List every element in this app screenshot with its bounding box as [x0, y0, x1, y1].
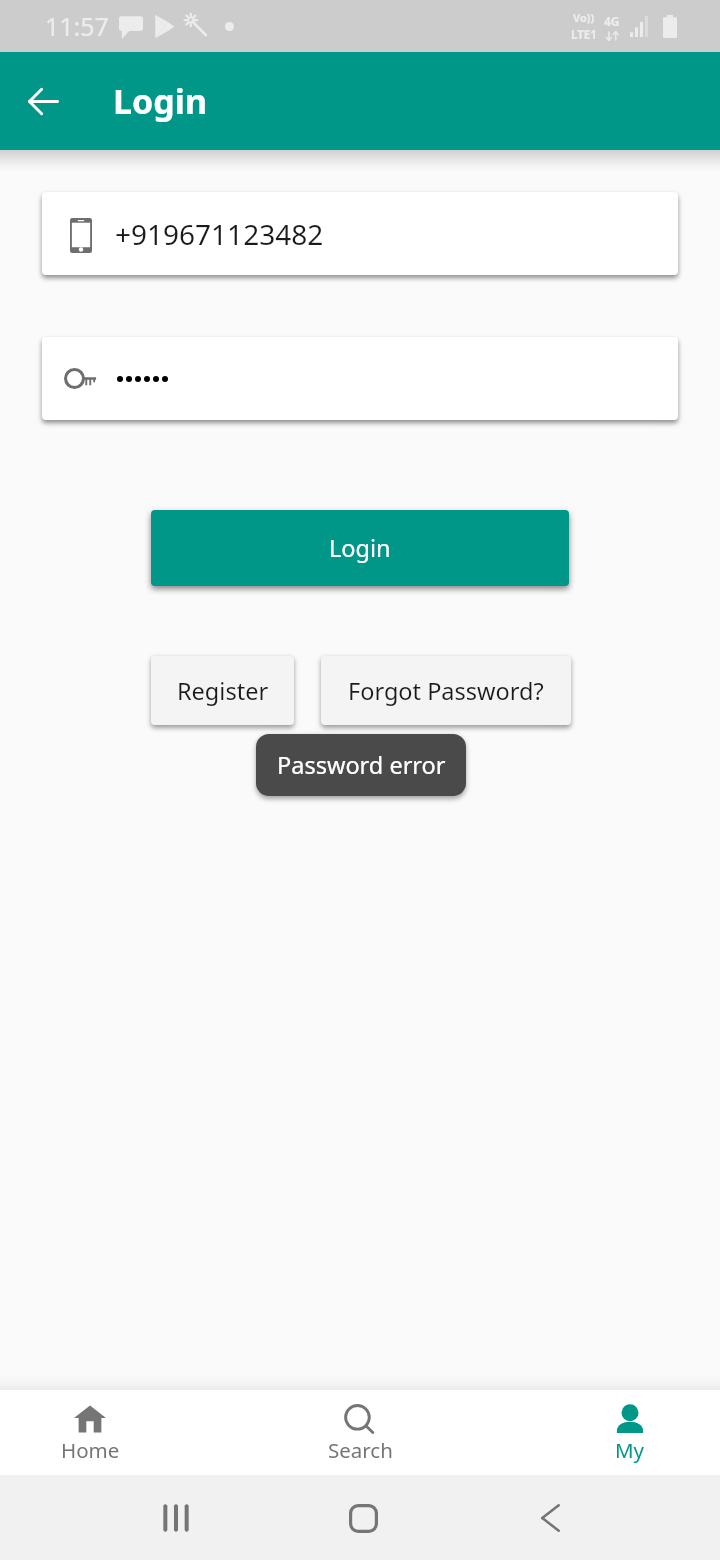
button[interactable]: Back: [526, 1494, 574, 1542]
staticText: Login: [113, 78, 208, 124]
staticText: 11:57: [45, 9, 109, 43]
button[interactable]: My: [540, 1390, 720, 1475]
staticText: Register: [177, 675, 269, 707]
button[interactable]: Register: [151, 656, 294, 725]
staticText: LTE1: [571, 27, 597, 43]
staticText: Search: [328, 1436, 393, 1464]
staticText: Password error: [277, 749, 446, 781]
staticText: 4G: [604, 13, 620, 29]
staticText: Vo)): [573, 10, 595, 25]
button[interactable]: Home: [0, 1390, 180, 1475]
button[interactable]: Recent apps: [152, 1494, 200, 1542]
staticText: +919671123482: [115, 215, 324, 253]
button[interactable]: Search: [270, 1390, 450, 1475]
button[interactable]: Login: [151, 510, 569, 586]
staticText: Login: [329, 532, 391, 564]
button[interactable]: Back: [14, 72, 72, 130]
button[interactable]: Forgot Password?: [321, 656, 571, 725]
staticText: My: [615, 1436, 645, 1464]
button[interactable]: Home: [339, 1494, 387, 1542]
staticText: Home: [61, 1436, 120, 1464]
staticText: Forgot Password?: [348, 675, 544, 707]
